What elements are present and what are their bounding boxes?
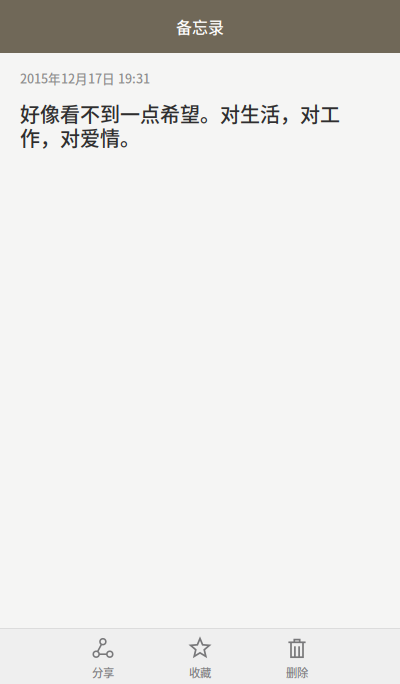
staticText: 收藏 <box>189 664 211 680</box>
staticText: 好像看不到一点希望。对生活，对工作，对爱情。 <box>20 99 340 152</box>
staticText: 删除 <box>286 664 308 680</box>
staticText: 备忘录 <box>176 15 224 38</box>
button[interactable]: 删除 <box>248 629 345 684</box>
button[interactable]: 收藏 <box>151 629 248 684</box>
staticText: 分享 <box>92 664 114 680</box>
staticText: 2015年12月17日 19:31 <box>20 69 150 87</box>
button[interactable]: 分享 <box>54 629 151 684</box>
